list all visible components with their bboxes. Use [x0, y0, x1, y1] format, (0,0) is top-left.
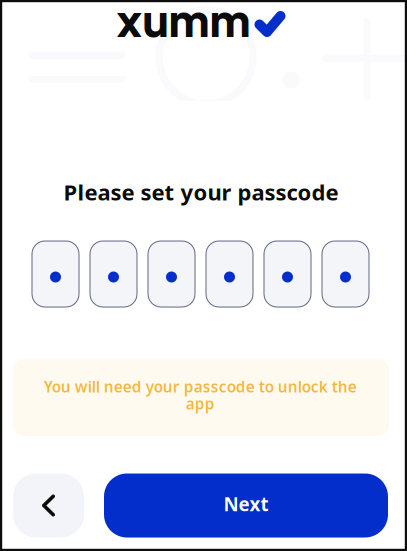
- button[interactable]: Next: [104, 473, 388, 537]
- staticText: You will need your passcode to unlock th…: [43, 376, 356, 414]
- staticText: Next: [223, 491, 268, 517]
- staticText: xumm: [116, 0, 250, 47]
- button[interactable]: Back: [13, 473, 84, 537]
- staticText: Please set your passcode: [63, 177, 338, 207]
